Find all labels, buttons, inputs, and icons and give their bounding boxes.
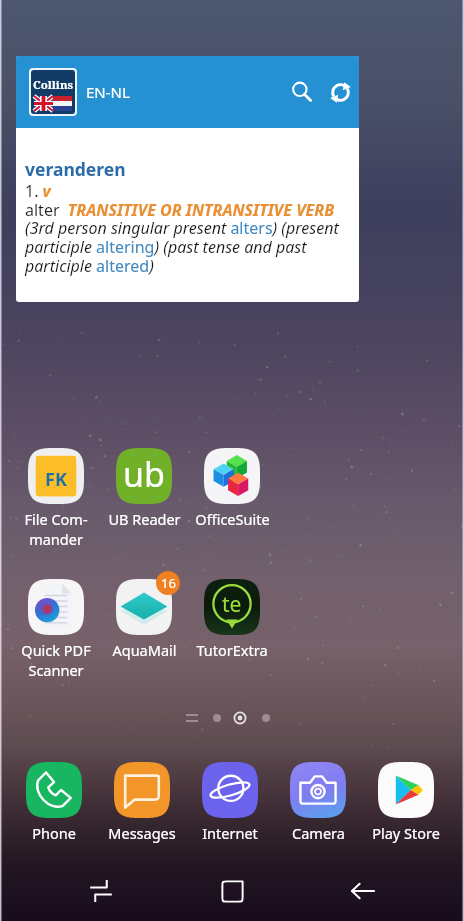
staticText: te: [222, 590, 242, 619]
button[interactable]: Collins: [16, 56, 359, 302]
staticText: OfficeSuite: [195, 509, 270, 529]
staticText: Collins: [33, 77, 74, 93]
button[interactable]: OfficeSuite: [188, 448, 276, 529]
button[interactable]: Quick PDF Scanner: [12, 579, 100, 681]
staticText: Internet: [202, 823, 258, 843]
staticText: Messages: [108, 823, 176, 843]
staticText: AquaMail: [112, 640, 177, 660]
button[interactable]: Home: [202, 861, 262, 921]
button[interactable]: Search: [284, 74, 320, 110]
staticText: EN-NL: [86, 82, 130, 102]
staticText: File Com- mander: [24, 509, 88, 550]
staticText: alter TRANSITIVE OR INTRANSITIVE VERB: [25, 199, 335, 221]
button[interactable]: Messages: [98, 762, 186, 843]
staticText: veranderen: [25, 157, 126, 181]
button[interactable]: te: [188, 579, 276, 660]
staticText: Play Store: [372, 823, 440, 843]
button[interactable]: Refresh: [322, 74, 358, 110]
button[interactable]: ub: [100, 448, 188, 529]
staticText: 16: [161, 574, 176, 592]
staticText: TutorExtra: [196, 640, 268, 660]
button[interactable]: Camera: [274, 762, 362, 843]
button[interactable]: Recents: [71, 861, 131, 921]
button[interactable]: Back: [333, 861, 393, 921]
button[interactable]: Phone: [10, 762, 98, 843]
staticText: Phone: [32, 823, 76, 843]
staticText: Quick PDF Scanner: [21, 640, 91, 681]
staticText: ub: [123, 451, 165, 497]
button[interactable]: Play Store: [362, 762, 450, 843]
staticText: Camera: [292, 823, 345, 843]
button[interactable]: Internet: [186, 762, 274, 843]
button[interactable]: FK: [12, 448, 100, 550]
staticText: FK: [45, 467, 67, 492]
staticText: (3rd person singular present alters) (pr…: [25, 217, 357, 276]
staticText: UB Reader: [108, 509, 181, 529]
staticText: 1. v: [25, 180, 51, 202]
button[interactable]: 16: [100, 579, 188, 660]
